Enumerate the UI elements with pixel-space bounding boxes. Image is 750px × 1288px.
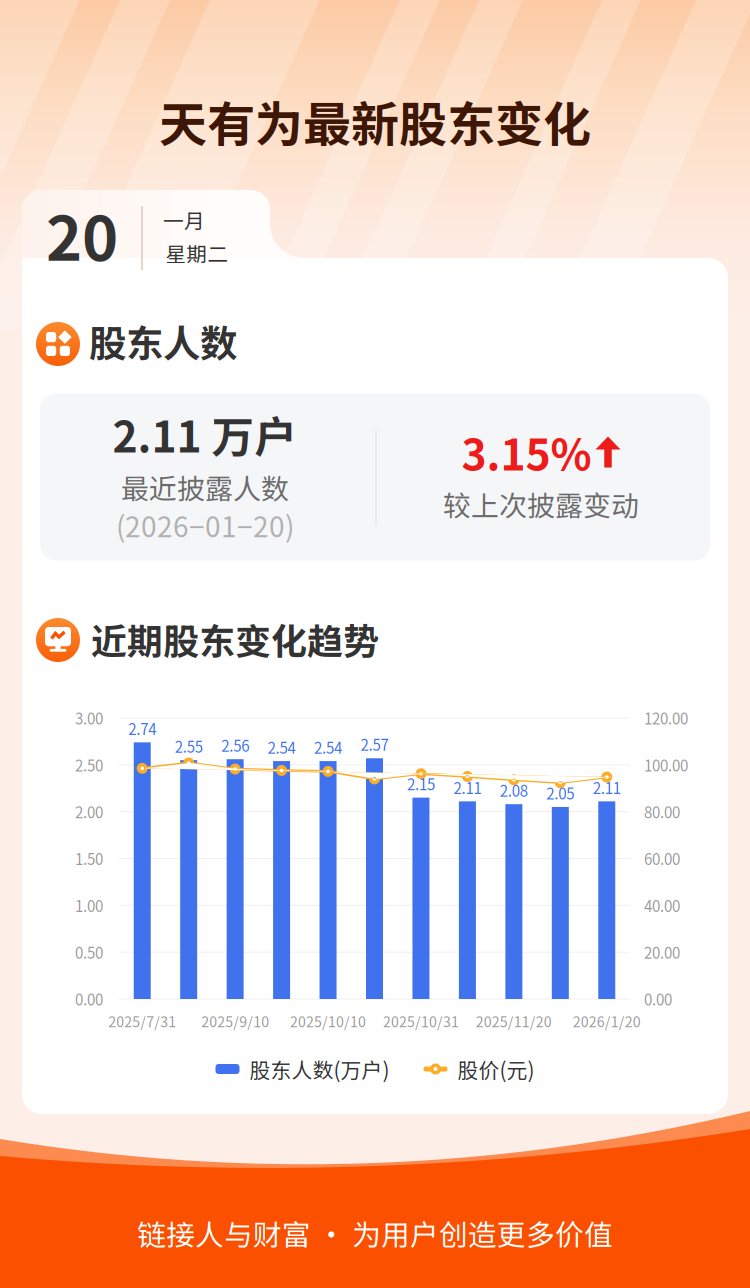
staticText: 最近披露人数 [121, 467, 289, 507]
staticText: 20.00 [644, 941, 680, 963]
staticText: 近期股东变化趋势 [91, 613, 379, 665]
staticText: 星期二 [165, 238, 228, 268]
staticText: (2026−01−20) [116, 505, 294, 545]
staticText: 2.08 [500, 779, 528, 801]
staticText: 较上次披露变动 [443, 484, 639, 524]
staticText: 2.74 [128, 717, 156, 739]
staticText: 2025/10/10 [290, 1011, 366, 1031]
staticText: 2025/10/31 [383, 1011, 459, 1031]
staticText: 60.00 [644, 848, 680, 869]
staticText: 0.00 [75, 988, 103, 1010]
staticText: 2.11 [593, 776, 621, 798]
staticText: 股东人数 [89, 314, 237, 368]
staticText: 股价(元) [457, 1054, 534, 1084]
staticText: 2.54 [268, 736, 296, 758]
staticText: 120.00 [644, 707, 688, 729]
staticText: 2.55 [175, 735, 203, 757]
staticText: 2.05 [546, 782, 574, 804]
staticText: 2.57 [360, 733, 388, 755]
staticText: 100.00 [644, 754, 688, 776]
staticText: 0.50 [75, 941, 103, 963]
staticText: 链接人与财富 · 为用户创造更多价值 [137, 1212, 613, 1254]
staticText: 40.00 [644, 894, 680, 916]
staticText: 股东人数(万户) [249, 1054, 389, 1084]
staticText: 2.00 [75, 801, 103, 823]
staticText: 2026/1/20 [573, 1011, 641, 1031]
staticText: 80.00 [644, 801, 680, 823]
staticText: 1.00 [75, 894, 103, 916]
staticText: 1.50 [75, 848, 103, 869]
staticText: 2025/11/20 [476, 1011, 552, 1031]
staticText: 20 [46, 190, 118, 278]
staticText: 2.11 [453, 776, 481, 798]
staticText: 3.00 [75, 707, 103, 729]
staticText: 一月 [163, 205, 205, 235]
staticText: 2.56 [221, 734, 249, 756]
staticText: 天有为最新股东变化 [159, 86, 591, 156]
staticText: 2025/7/31 [108, 1011, 176, 1031]
staticText: 2025/9/10 [201, 1011, 269, 1031]
staticText: 2.11 万户 [112, 403, 297, 465]
staticText: 2.15 [407, 773, 435, 794]
staticText: 3.15% [461, 421, 591, 483]
staticText: 2.54 [314, 736, 342, 758]
staticText: 2.50 [75, 754, 103, 776]
staticText: 0.00 [644, 988, 672, 1010]
